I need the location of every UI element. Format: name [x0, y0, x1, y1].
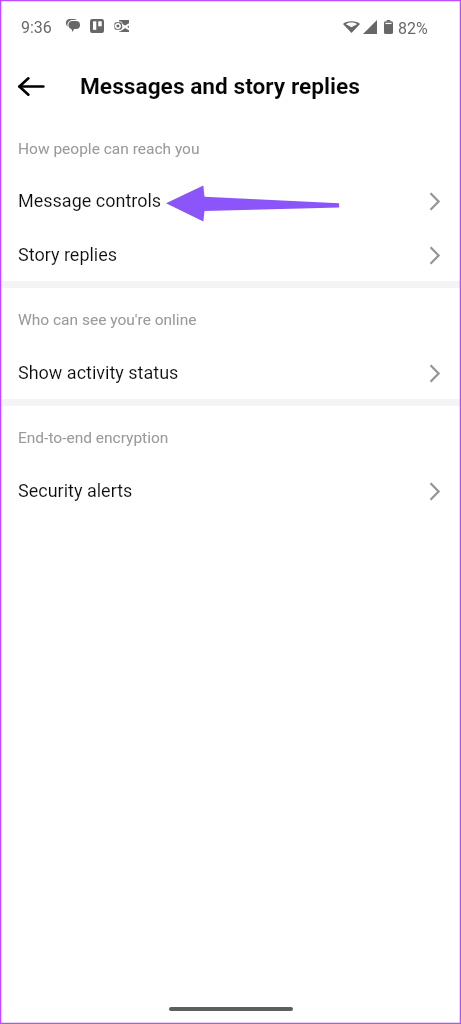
button[interactable]: Security alerts	[0, 463, 461, 517]
staticText: Message controls	[18, 190, 162, 211]
staticText: How people can reach you	[18, 140, 200, 158]
staticText: Security alerts	[18, 480, 133, 501]
button[interactable]: Message controls	[0, 173, 461, 227]
staticText: 9:36	[21, 18, 52, 33]
staticText: Story replies	[18, 244, 118, 265]
button[interactable]: Show activity status	[0, 345, 461, 399]
staticText: End-to-end encryption	[18, 429, 169, 447]
staticText: Show activity status	[18, 362, 179, 383]
staticText: Messages and story replies	[80, 73, 360, 100]
staticText: 82%	[398, 19, 428, 34]
button[interactable]: Story replies	[0, 227, 461, 281]
staticText: Who can see you're online	[18, 311, 197, 329]
button[interactable]: Back	[7, 62, 55, 110]
